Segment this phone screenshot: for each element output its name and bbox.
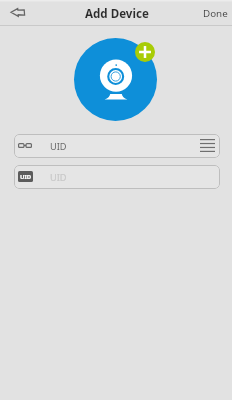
staticText: UID bbox=[50, 140, 67, 153]
button[interactable]: UID bbox=[14, 165, 220, 189]
button[interactable]: UID bbox=[14, 134, 220, 158]
staticText: UID bbox=[50, 171, 67, 184]
button[interactable]: Done bbox=[197, 0, 232, 26]
button[interactable]: Back bbox=[3, 0, 33, 26]
staticText: UID bbox=[20, 173, 32, 181]
staticText: Add Device bbox=[85, 6, 149, 22]
button[interactable]: Add device bbox=[135, 42, 155, 62]
staticText: Done bbox=[203, 7, 228, 20]
